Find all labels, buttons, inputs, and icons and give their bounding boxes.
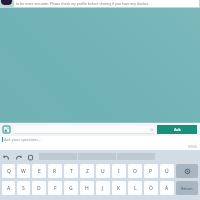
staticText: Ask [174,127,181,132]
button[interactable]: W [17,164,30,178]
staticText: Q [7,168,11,175]
staticText: G [69,185,73,192]
button[interactable]: I [112,164,126,178]
staticText: O [133,168,137,175]
button[interactable]: E [32,164,46,178]
button[interactable]: L [128,181,142,195]
staticText: P [149,168,153,175]
button[interactable]: G [64,181,78,195]
staticText: Ü [165,168,169,175]
button[interactable]: O [128,164,142,178]
button[interactable]: Undo [2,153,10,161]
staticText: Z [86,168,89,175]
button[interactable]: Backspace [176,164,198,178]
button[interactable] [14,126,154,134]
staticText: to be more accurate. Please check my pro… [16,1,150,6]
button[interactable]: Z [80,164,94,178]
staticText: Ask your question... [4,137,41,142]
button[interactable]: Q [2,164,15,178]
button[interactable]: Ask [157,125,197,134]
button[interactable]: K [112,181,126,195]
button[interactable]: Redo [14,153,22,161]
staticText: J [102,185,104,192]
staticText: Return [181,186,193,191]
button[interactable]: F [48,181,62,195]
button[interactable]: Ö [144,181,158,195]
button[interactable]: A [2,181,15,195]
staticText: K [117,185,121,192]
staticText: A [7,185,11,192]
staticText: 0/500 [188,145,197,149]
staticText: W [21,168,26,175]
staticText: I [118,168,120,175]
button[interactable]: D [32,181,46,195]
button[interactable]: P [144,164,158,178]
button[interactable]: Return [176,181,198,195]
button[interactable]: R [48,164,62,178]
button[interactable]: Clipboard [26,153,34,161]
button[interactable]: Attach image [2,125,11,134]
button[interactable]: to be more accurate. Please check my pro… [0,0,200,8]
staticText: T [70,168,73,175]
staticText: L [134,185,137,192]
staticText: F [54,185,57,192]
button[interactable]: Ä [160,181,174,195]
button[interactable]: Ü [160,164,174,178]
staticText: H [85,185,89,192]
button[interactable]: J [96,181,110,195]
staticText: E [38,168,41,175]
staticText: S [22,185,25,192]
staticText: Ä [165,185,169,192]
staticText: D [37,185,41,192]
button[interactable]: H [80,181,94,195]
staticText: R [53,168,57,175]
staticText: U [101,168,105,175]
staticText: Ö [149,185,153,192]
button[interactable]: U [96,164,110,178]
button[interactable]: T [64,164,78,178]
button[interactable]: S [17,181,30,195]
